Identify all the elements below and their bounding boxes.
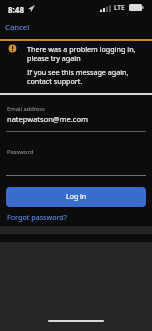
staticText: natepwatson@me.com bbox=[7, 114, 88, 124]
button[interactable]: Forgot password? bbox=[7, 212, 67, 222]
staticText: If you see this message again, bbox=[27, 67, 129, 77]
button[interactable]: Log in bbox=[6, 187, 146, 207]
staticText: LTE bbox=[114, 3, 125, 12]
staticText: There was a problem logging in, bbox=[27, 44, 136, 54]
staticText: Password bbox=[7, 148, 34, 156]
staticText: Email address bbox=[7, 105, 45, 113]
staticText: contact support. bbox=[27, 76, 83, 86]
staticText: 8:48 bbox=[8, 4, 24, 15]
staticText: Log in bbox=[66, 192, 87, 202]
button[interactable]: Cancel bbox=[5, 22, 30, 33]
staticText: please try again bbox=[27, 53, 81, 63]
